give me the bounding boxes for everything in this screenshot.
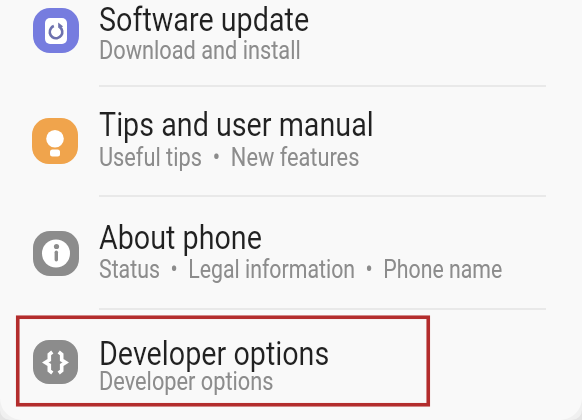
staticText: Tips and user manual: [99, 105, 374, 144]
staticText: Developer options: [99, 334, 329, 373]
button[interactable]: [0, 310, 582, 420]
staticText: Software update: [99, 0, 309, 39]
button[interactable]: [0, 0, 582, 86]
staticText: Useful tips • New features: [99, 143, 360, 172]
button[interactable]: [0, 197, 582, 309]
button[interactable]: [0, 87, 582, 197]
staticText: Download and install: [99, 36, 301, 65]
staticText: About phone: [99, 218, 263, 257]
staticText: Status • Legal information • Phone name: [99, 255, 503, 284]
staticText: Developer options: [99, 367, 274, 396]
